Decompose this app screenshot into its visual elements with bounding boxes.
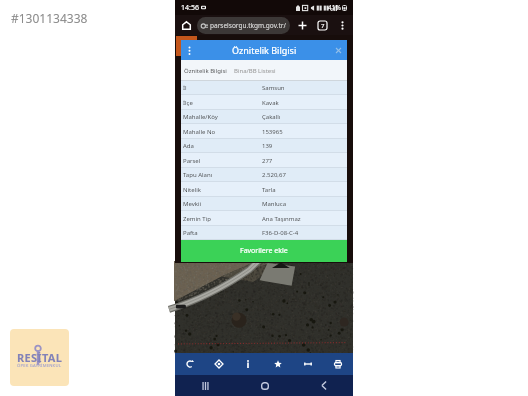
staticText: Manluca: [262, 200, 287, 208]
button[interactable]: Tapu Alanı: [181, 168, 347, 182]
button[interactable]: Öznitelik Bilgisi: [181, 60, 230, 81]
button[interactable]: Recents: [175, 375, 235, 396]
button[interactable]: Measure: [293, 353, 323, 375]
staticText: Öznitelik Bilgisi: [232, 44, 297, 56]
staticText: Samsun: [262, 84, 285, 92]
staticText: Zemin Tip: [183, 215, 211, 223]
button[interactable]: Favorilere ekle: [181, 240, 347, 262]
button[interactable]: Home: [175, 15, 197, 35]
staticText: #1301134338: [11, 10, 88, 26]
button[interactable]: Mevkii: [181, 197, 347, 211]
staticText: parselsorgu.tkgm.gov.tr/#/: [210, 21, 286, 30]
staticText: Ada: [183, 142, 194, 150]
staticText: Öznitelik Bilgisi: [184, 67, 227, 75]
staticText: 7: [321, 22, 325, 30]
button[interactable]: Nitelik: [181, 182, 347, 197]
button[interactable]: Print: [323, 353, 353, 375]
button[interactable]: Zemin Tip: [181, 211, 347, 226]
button[interactable]: Close: [332, 44, 344, 56]
button[interactable]: Mahalle No: [181, 124, 347, 139]
button[interactable]: Info: [233, 353, 263, 375]
staticText: Favorilere ekle: [240, 246, 288, 256]
staticText: Mahalle No: [183, 128, 216, 136]
staticText: 14:56: [181, 3, 199, 13]
staticText: Parsel: [183, 157, 201, 165]
button[interactable]: RESİTAL: [10, 329, 69, 386]
button[interactable]: İlçe: [181, 95, 347, 110]
staticText: 2.520,67: [262, 171, 286, 179]
button[interactable]: Ada: [181, 139, 347, 153]
button[interactable]: Refresh: [175, 353, 204, 375]
button[interactable]: New tab: [295, 15, 309, 35]
staticText: Çakallı: [262, 113, 281, 121]
button[interactable]: Back: [294, 375, 353, 396]
button[interactable]: İl: [181, 81, 347, 95]
staticText: 153965: [262, 128, 283, 136]
staticText: Pafta: [183, 229, 198, 237]
staticText: Kavak: [262, 99, 279, 107]
staticText: İlçe: [183, 99, 193, 107]
staticText: Tapu Alanı: [183, 171, 213, 179]
button[interactable]: Bina/BB Listesi: [230, 60, 279, 81]
staticText: 139: [262, 142, 273, 150]
button[interactable]: Mahalle/Köy: [181, 110, 347, 124]
staticText: ÖPEK GAYRİMENKUL: [17, 363, 62, 369]
staticText: Nitelik: [183, 186, 201, 194]
button[interactable]: More options: [336, 15, 348, 35]
button[interactable]: Pafta: [181, 226, 347, 240]
staticText: Mevkii: [183, 200, 202, 208]
staticText: İl: [183, 84, 187, 92]
button[interactable]: Locate: [204, 353, 233, 375]
staticText: Tarla: [262, 186, 276, 194]
button[interactable]: Parsel: [181, 153, 347, 168]
staticText: F36-D-08-C-4: [262, 229, 299, 237]
staticText: RESİTAL: [17, 350, 63, 365]
staticText: 41%: [328, 3, 341, 12]
button[interactable]: Tabs: [315, 15, 329, 35]
staticText: Mahalle/Köy: [183, 113, 218, 121]
button[interactable]: parselsorgu.tkgm.gov.tr/#/: [197, 17, 290, 34]
staticText: Ana Taşınmaz: [262, 215, 301, 223]
button[interactable]: Home: [235, 375, 294, 396]
staticText: Bina/BB Listesi: [234, 67, 276, 75]
button[interactable]: Menu: [183, 44, 196, 57]
staticText: 277: [262, 157, 273, 165]
button[interactable]: Favourite: [263, 353, 293, 375]
